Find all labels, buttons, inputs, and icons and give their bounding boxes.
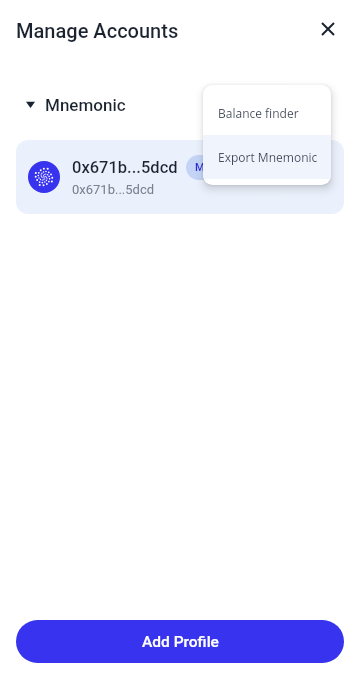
button[interactable]: Add Profile — [16, 620, 344, 663]
button[interactable]: Export Mnemonic — [203, 135, 331, 179]
button[interactable]: Close — [308, 9, 348, 49]
button[interactable]: 0x671b...5dcd — [16, 140, 344, 214]
staticText: Manage Accounts — [16, 19, 179, 42]
staticText: Mnemonic — [45, 95, 126, 115]
staticText: Add Profile — [142, 633, 219, 651]
button[interactable]: Balance finder — [203, 91, 331, 135]
staticText: Mnemonic — [195, 161, 248, 174]
staticText: Balance finder — [218, 105, 299, 121]
staticText: 0x671b...5dcd — [72, 158, 178, 177]
button[interactable]: Mnemonic — [26, 94, 126, 116]
staticText: 0x671b...5dcd — [72, 182, 155, 197]
staticText: Export Mnemonic — [218, 149, 318, 165]
